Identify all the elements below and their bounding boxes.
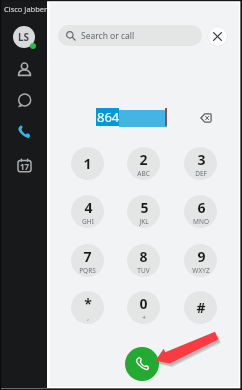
button[interactable]: *	[71, 291, 104, 324]
staticText: LS	[18, 30, 30, 44]
button[interactable]: Meetings	[13, 154, 35, 176]
staticText: WXYZ	[192, 266, 210, 275]
button[interactable]: 3	[184, 147, 217, 180]
button[interactable]: Chats	[13, 89, 35, 111]
button[interactable]: #	[184, 291, 217, 324]
button[interactable]: 4	[71, 195, 104, 228]
staticText: PQRS	[79, 266, 96, 275]
button[interactable]: 0	[127, 291, 160, 324]
staticText: #	[196, 298, 206, 317]
staticText: GHI	[82, 217, 94, 226]
staticText: JKL	[139, 217, 149, 226]
button[interactable]: Search or call	[58, 25, 202, 46]
button[interactable]: 1	[71, 147, 104, 180]
button[interactable]: Contacts	[13, 58, 35, 80]
staticText: 8640	[97, 108, 119, 126]
staticText: 0	[139, 294, 148, 313]
staticText: 17	[20, 161, 30, 172]
staticText: 7	[83, 247, 92, 266]
button[interactable]: 9	[184, 244, 217, 277]
staticText: DEF	[195, 169, 207, 178]
button[interactable]: Backspace	[198, 110, 214, 126]
button[interactable]: Close	[207, 26, 228, 47]
staticText: 1	[83, 154, 92, 173]
staticText: 5	[140, 198, 149, 217]
button[interactable]: 6	[184, 195, 217, 228]
staticText: Cisco Jabber	[4, 4, 48, 14]
button[interactable]: 2	[127, 147, 160, 180]
staticText: *	[84, 294, 92, 313]
button[interactable]: Call	[125, 347, 159, 381]
button[interactable]: Calls	[13, 121, 35, 143]
staticText: 8	[139, 247, 148, 266]
staticText: 4	[84, 198, 93, 217]
staticText: 3	[197, 150, 206, 169]
staticText: TUV	[137, 266, 150, 275]
staticText: ,	[87, 313, 89, 322]
button[interactable]: 8	[127, 244, 160, 277]
staticText: ABC	[137, 169, 150, 178]
staticText: MNO	[193, 217, 209, 226]
staticText: Search or call	[81, 30, 135, 42]
staticText: 9	[197, 247, 206, 266]
button[interactable]: Profile	[13, 26, 35, 48]
staticText: 6	[197, 198, 206, 217]
staticText: +	[142, 313, 146, 322]
staticText: 2	[139, 150, 148, 169]
button[interactable]: 7	[71, 244, 104, 277]
button[interactable]: 5	[127, 195, 160, 228]
